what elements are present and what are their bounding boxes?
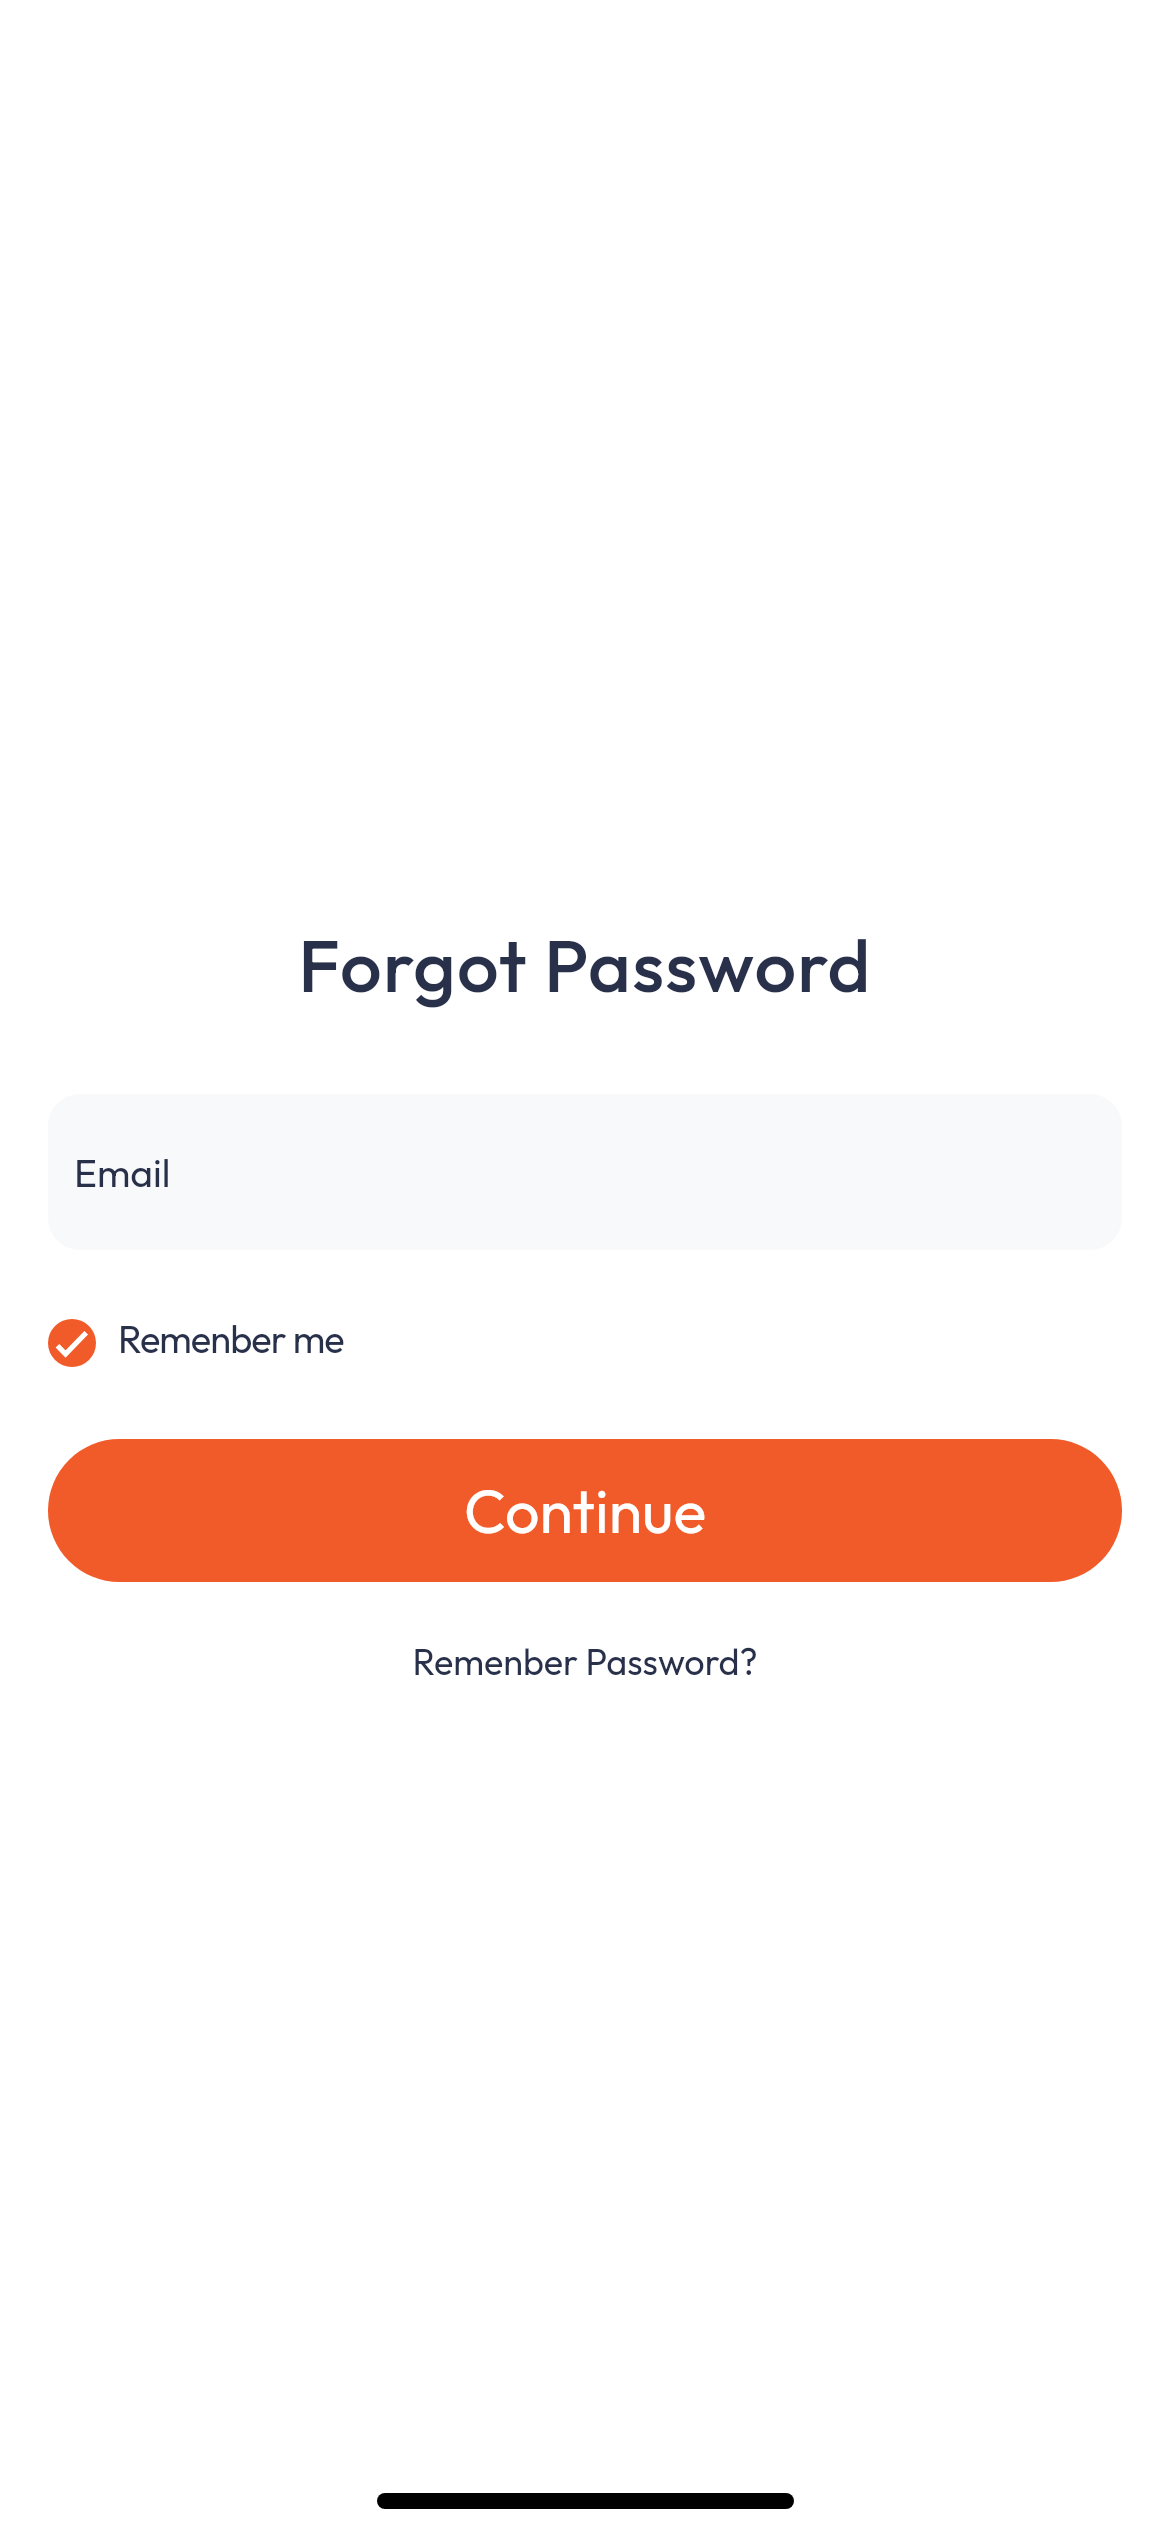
staticText: Continue <box>464 1472 707 1549</box>
staticText: Email <box>74 1148 171 1197</box>
button[interactable]: Email <box>48 1094 1122 1250</box>
other: Home indicator <box>377 2493 794 2509</box>
staticText: Forgot Password <box>0 918 1170 1011</box>
button[interactable]: Continue <box>48 1439 1122 1582</box>
button[interactable]: Remenber Password? <box>402 1632 768 1691</box>
button[interactable]: Remenber me <box>48 1319 344 1367</box>
staticText: Remenber me <box>118 1315 344 1363</box>
